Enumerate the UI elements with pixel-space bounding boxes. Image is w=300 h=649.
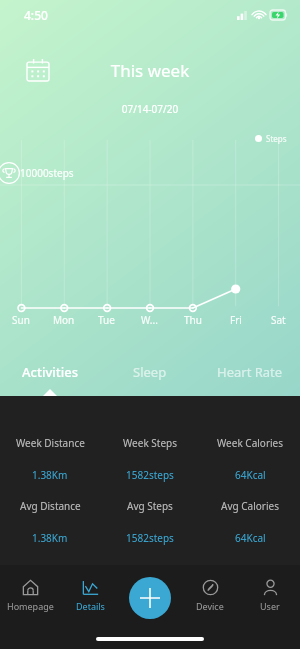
staticText: Activities <box>22 363 79 381</box>
staticText: 10000steps <box>20 166 74 180</box>
staticText: 64Kcal <box>235 468 266 482</box>
staticText: Fri <box>230 313 242 327</box>
staticText: 1582steps <box>126 468 174 482</box>
staticText: Steps <box>266 133 287 144</box>
staticText: Mon <box>53 313 75 327</box>
button[interactable]: Heart Rate <box>200 363 300 396</box>
button[interactable]: User <box>240 565 300 625</box>
staticText: Tue <box>98 313 115 327</box>
staticText: 1582steps <box>126 531 174 545</box>
button[interactable]: Calendar <box>25 57 51 83</box>
button[interactable]: Details <box>60 565 120 625</box>
staticText: 64Kcal <box>235 531 266 545</box>
staticText: This week <box>0 59 300 82</box>
staticText: Avg Steps <box>127 499 173 513</box>
staticText: Device <box>196 600 224 612</box>
staticText: 07/14-07/20 <box>0 102 300 116</box>
button[interactable]: Homepage <box>0 565 60 625</box>
button[interactable]: Add <box>129 577 171 619</box>
staticText: Week Steps <box>123 436 177 450</box>
staticText: 1.38Km <box>32 531 68 545</box>
staticText: Avg Calories <box>221 499 279 513</box>
staticText: Homepage <box>7 600 54 612</box>
staticText: Sun <box>12 313 30 327</box>
staticText: Week Calories <box>217 436 284 450</box>
staticText: Heart Rate <box>217 363 283 381</box>
button[interactable]: Sleep <box>100 363 200 396</box>
staticText: Week Distance <box>16 436 85 450</box>
staticText: User <box>260 600 280 612</box>
staticText: 4:50 <box>24 7 48 23</box>
button[interactable]: Device <box>180 565 240 625</box>
staticText: Thu <box>184 313 202 327</box>
staticText: Details <box>76 600 105 612</box>
button[interactable]: Activities <box>0 363 100 396</box>
staticText: Avg Distance <box>20 499 81 513</box>
staticText: Sat <box>271 313 286 327</box>
staticText: W... <box>141 313 158 327</box>
staticText: Sleep <box>133 363 167 381</box>
staticText: 1.38Km <box>32 468 68 482</box>
